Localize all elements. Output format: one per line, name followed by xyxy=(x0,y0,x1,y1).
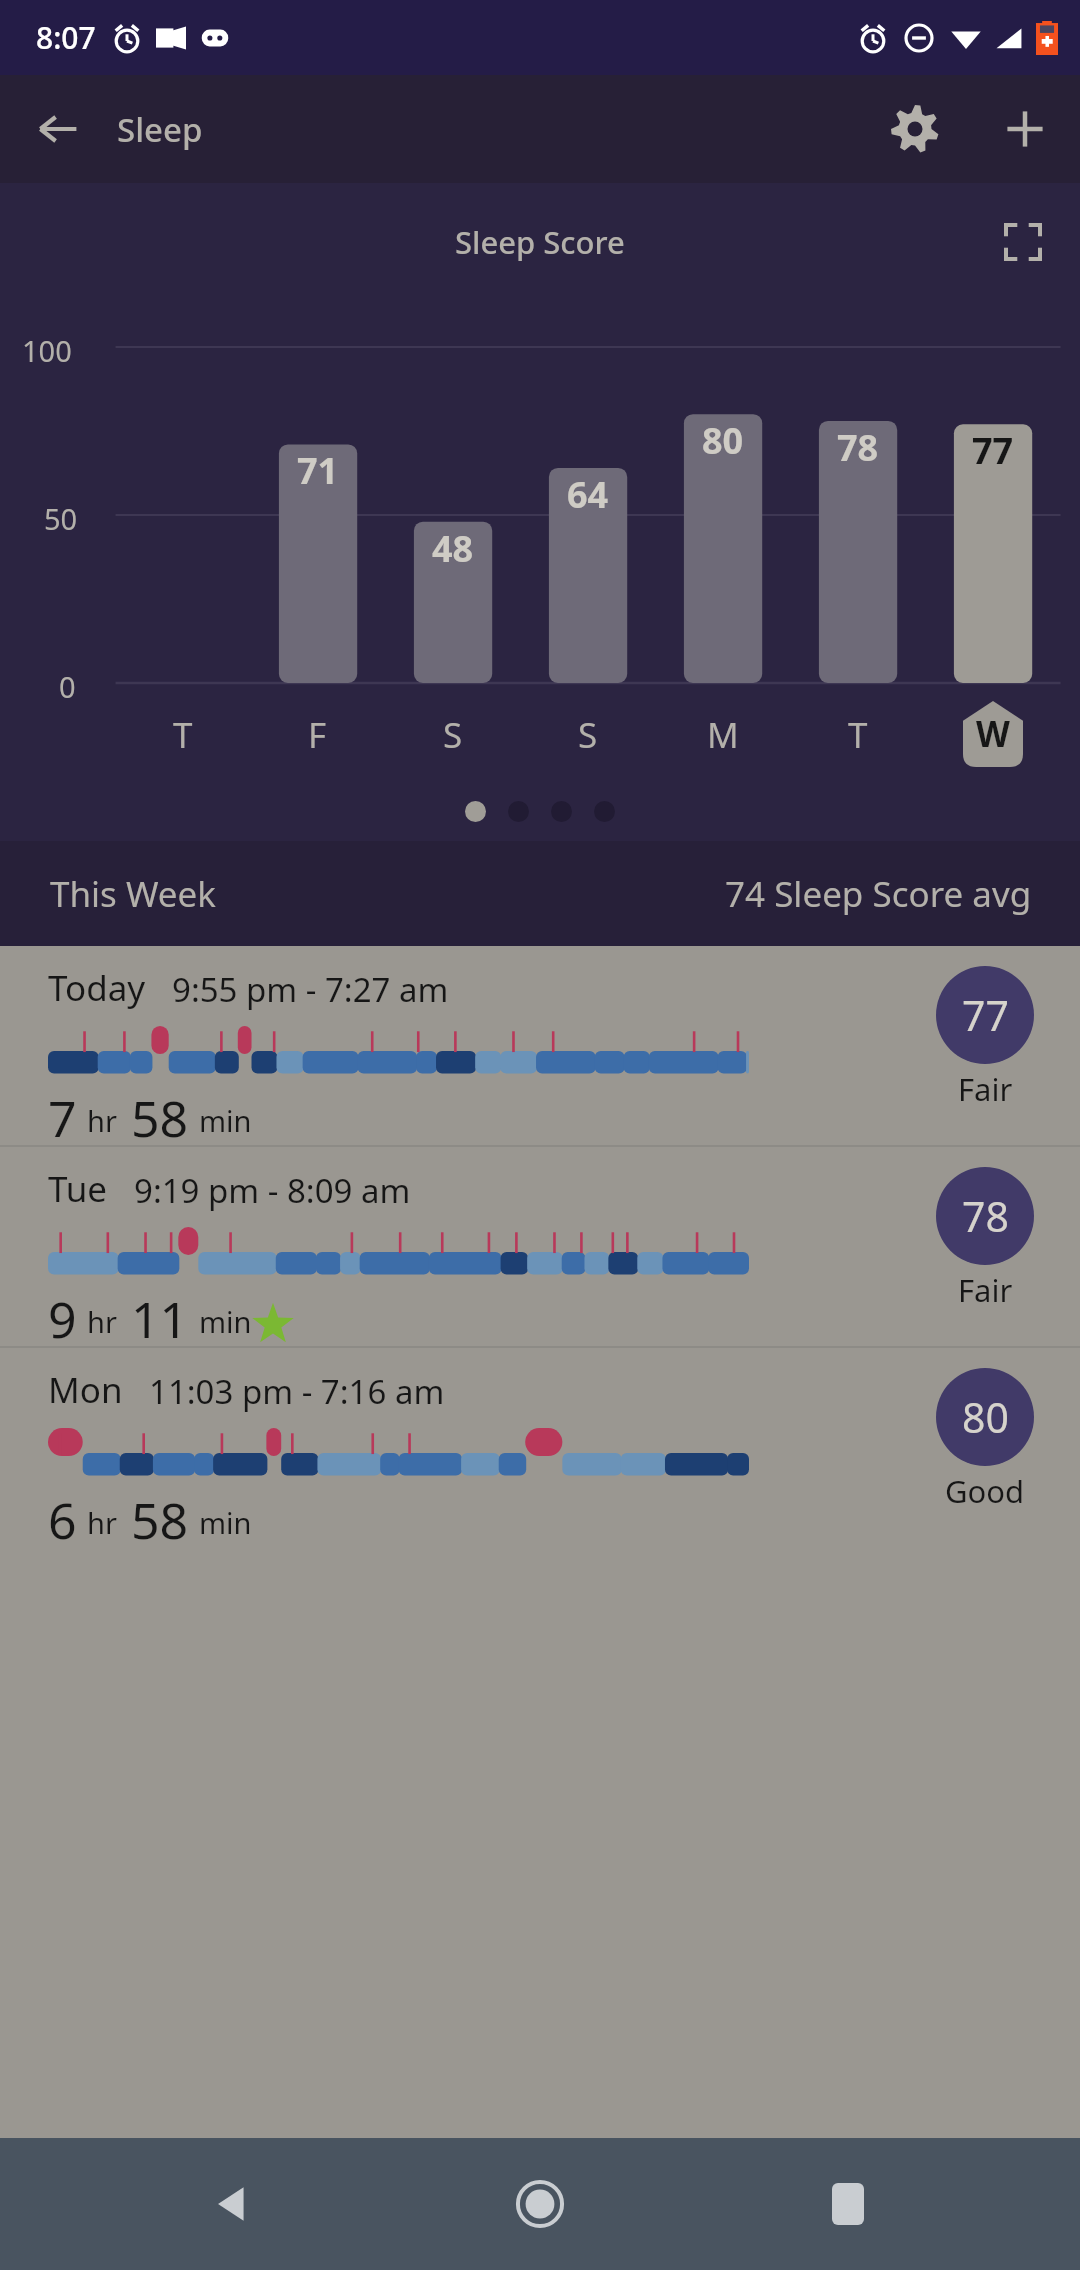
staticText: 64 xyxy=(567,470,609,519)
staticText: Fair xyxy=(958,1068,1013,1110)
staticText: F xyxy=(308,711,327,759)
staticText: 77 xyxy=(972,426,1014,475)
button[interactable]: Home xyxy=(465,2138,615,2270)
staticText: Good xyxy=(945,1470,1025,1512)
staticText: S xyxy=(443,711,463,759)
button[interactable]: Tue xyxy=(0,1147,1080,1346)
staticText: 74 Sleep Score avg xyxy=(725,870,1032,918)
staticText: 11:03 pm - 7:16 am xyxy=(149,1369,445,1414)
staticText: Sleep Score xyxy=(455,221,625,263)
staticText: min xyxy=(199,1503,252,1542)
staticText: min xyxy=(199,1101,252,1140)
staticText: W xyxy=(976,710,1010,758)
button[interactable]: Page 2 xyxy=(508,801,529,822)
staticText: 80 xyxy=(962,1389,1009,1445)
staticText: min xyxy=(199,1302,252,1341)
staticText: hr xyxy=(87,1101,117,1140)
staticText: 100 xyxy=(22,331,72,370)
staticText: Fair xyxy=(958,1269,1013,1311)
staticText: 9:19 pm - 8:09 am xyxy=(134,1168,411,1213)
staticText: hr xyxy=(87,1503,117,1542)
button[interactable]: Add xyxy=(970,75,1080,183)
button[interactable]: Mon xyxy=(0,1348,1080,1547)
button[interactable]: Settings xyxy=(860,75,970,183)
button[interactable]: Page 1 xyxy=(465,801,486,822)
staticText: 9 xyxy=(48,1285,77,1346)
staticText: M xyxy=(707,711,739,759)
staticText: 0 xyxy=(59,667,76,706)
staticText: 50 xyxy=(44,499,78,538)
staticText: Sleep xyxy=(117,107,203,152)
staticText: 78 xyxy=(962,1188,1009,1244)
staticText: 48 xyxy=(432,524,474,573)
staticText: T xyxy=(848,711,868,759)
staticText: 11 xyxy=(131,1285,189,1346)
staticText: 7 xyxy=(48,1084,77,1145)
staticText: 71 xyxy=(297,446,339,495)
button[interactable]: Page 4 xyxy=(594,801,615,822)
staticText: T xyxy=(173,711,193,759)
button[interactable]: Back xyxy=(0,75,115,183)
staticText: 78 xyxy=(837,423,879,472)
button[interactable]: Page 3 xyxy=(551,801,572,822)
staticText: 8:07 xyxy=(36,17,96,58)
button[interactable]: Expand chart xyxy=(992,211,1054,273)
staticText: Tue xyxy=(48,1165,108,1213)
staticText: 58 xyxy=(131,1084,189,1145)
staticText: 77 xyxy=(962,987,1009,1043)
staticText: Mon xyxy=(48,1366,123,1414)
button[interactable]: Recent apps xyxy=(773,2138,923,2270)
button[interactable]: This Week xyxy=(0,841,1080,946)
staticText: 80 xyxy=(702,416,744,465)
button[interactable]: Today xyxy=(0,946,1080,1145)
staticText: 6 xyxy=(48,1486,77,1547)
button[interactable]: Back xyxy=(158,2138,308,2270)
staticText: hr xyxy=(87,1302,117,1341)
staticText: 58 xyxy=(131,1486,189,1547)
staticText: Today xyxy=(48,964,146,1012)
staticText: 9:55 pm - 7:27 am xyxy=(172,967,449,1012)
staticText: S xyxy=(578,711,598,759)
staticText: This Week xyxy=(50,870,217,918)
